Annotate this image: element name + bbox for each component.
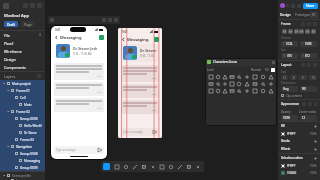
- button[interactable]: Some profile section: [0, 172, 45, 179]
- button[interactable]: Wireframe: [0, 47, 45, 55]
- button[interactable]: Icon 13: [235, 80, 243, 87]
- button[interactable]: 9:30: [121, 100, 159, 114]
- button[interactable]: Messaging: [0, 157, 45, 164]
- button[interactable]: Group 0000: [0, 115, 45, 122]
- button[interactable]: Icon 19: [214, 87, 221, 94]
- button[interactable]: Group 0009: [0, 164, 45, 171]
- button[interactable]: Type a message: [54, 146, 104, 154]
- button[interactable]: Icon 5: [243, 73, 251, 80]
- button[interactable]: Hello World: [0, 122, 45, 129]
- button[interactable]: 100%: [281, 115, 298, 121]
- button[interactable]: Frame 01: [0, 87, 45, 94]
- button[interactable]: Frame 03: [0, 136, 45, 143]
- button[interactable]: Icon 25: [259, 87, 267, 94]
- button[interactable]: Tool 7: [177, 164, 182, 169]
- button[interactable]: Icon 15: [251, 80, 259, 87]
- button[interactable]: Icon 3: [228, 73, 235, 80]
- button[interactable]: Add Stroke: [313, 139, 317, 143]
- button[interactable]: Close: [271, 60, 275, 64]
- button[interactable]: Align 3: [299, 29, 304, 34]
- button[interactable]: Hug: [281, 86, 298, 92]
- button[interactable]: 9:30: [54, 82, 104, 96]
- button[interactable]: Icon 12: [228, 80, 235, 87]
- button[interactable]: Cell: [0, 94, 45, 101]
- button[interactable]: Icon 0: [207, 73, 214, 80]
- button[interactable]: Page: [21, 21, 35, 27]
- button[interactable]: Add Fill: [313, 124, 317, 128]
- button[interactable]: Main project: [0, 80, 45, 87]
- button[interactable]: Icon 14: [243, 80, 251, 87]
- button[interactable]: Tool 9: [195, 164, 200, 169]
- button[interactable]: 9:30: [54, 63, 104, 80]
- button[interactable]: Main Content Pat..: [0, 101, 45, 108]
- button[interactable]: Draft: [4, 21, 18, 27]
- button[interactable]: Icon 10: [214, 80, 221, 87]
- button[interactable]: 12: [300, 115, 317, 121]
- button[interactable]: Align 4: [305, 29, 310, 34]
- button[interactable]: Icon 22: [235, 87, 243, 94]
- button[interactable]: X: [281, 41, 298, 47]
- button[interactable]: Align 2: [294, 29, 299, 34]
- button[interactable]: Icon 7: [259, 73, 267, 80]
- button[interactable]: Add Selection colors: [313, 156, 317, 160]
- button[interactable]: Frame 02: [0, 108, 45, 115]
- button[interactable]: 9:30: [54, 98, 104, 112]
- button[interactable]: Icon 17: [267, 80, 275, 87]
- button[interactable]: Add Effects: [313, 147, 317, 151]
- button[interactable]: 8: [290, 75, 297, 80]
- button[interactable]: Navigation: [0, 143, 45, 150]
- button[interactable]: FFFFFF: [281, 162, 317, 169]
- button[interactable]: 1EA362: [281, 169, 317, 176]
- button[interactable]: File: [0, 31, 45, 39]
- button[interactable]: 9:30: [121, 65, 159, 82]
- button[interactable]: FFFFFF: [281, 130, 317, 137]
- button[interactable]: Align 0: [282, 29, 287, 34]
- button[interactable]: Components: [0, 63, 45, 71]
- button[interactable]: Tool 8: [186, 164, 191, 169]
- button[interactable]: Call: [154, 37, 159, 42]
- button[interactable]: Icon 2: [221, 73, 228, 80]
- button[interactable]: Flow1: [0, 39, 45, 47]
- button[interactable]: Tool 2: [132, 164, 137, 169]
- button[interactable]: Icon 8: [267, 73, 275, 80]
- button[interactable]: Tool 4: [150, 164, 155, 169]
- button[interactable]: Group 0008: [0, 150, 45, 157]
- button[interactable]: Icon 6: [251, 73, 259, 80]
- button[interactable]: Icon 1: [214, 73, 221, 80]
- button[interactable]: 12: [281, 75, 288, 80]
- button[interactable]: H: [300, 53, 317, 59]
- button[interactable]: Icon 23: [243, 87, 251, 94]
- button[interactable]: Fill: [300, 86, 317, 92]
- button[interactable]: Align 1: [288, 29, 293, 34]
- button[interactable]: Dr Steve Josh: [0, 129, 45, 136]
- button[interactable]: Icon 21: [228, 87, 235, 94]
- button[interactable]: Tool 1: [123, 164, 128, 169]
- button[interactable]: Design: [0, 55, 45, 63]
- button[interactable]: Layers: [0, 179, 45, 180]
- button[interactable]: Tool 5: [159, 164, 164, 169]
- button[interactable]: Y: [300, 41, 317, 47]
- button[interactable]: Icon 18: [207, 87, 214, 94]
- button[interactable]: Dr. Steven Josh: [54, 42, 104, 60]
- button[interactable]: Call: [99, 35, 104, 40]
- button[interactable]: Icon 16: [259, 80, 267, 87]
- button[interactable]: 9:30: [121, 84, 159, 98]
- button[interactable]: Type a message: [121, 128, 159, 136]
- button[interactable]: Back: [121, 37, 126, 42]
- button[interactable]: Back: [50, 18, 54, 22]
- button[interactable]: Dr. Steven Josh: [121, 44, 159, 62]
- button[interactable]: Icon 26: [267, 87, 275, 94]
- button[interactable]: Icon 11: [221, 80, 228, 87]
- button[interactable]: Share: [303, 3, 318, 9]
- button[interactable]: Icon 24: [251, 87, 259, 94]
- button[interactable]: W: [281, 53, 298, 59]
